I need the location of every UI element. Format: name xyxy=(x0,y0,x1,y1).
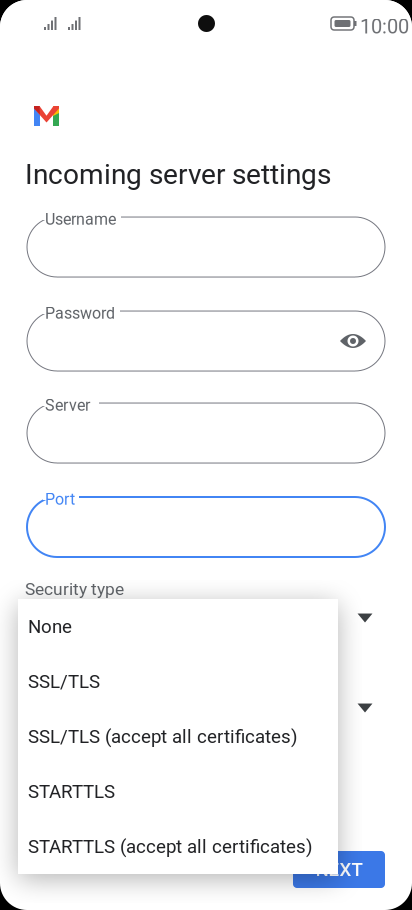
button[interactable]: Delete email from server xyxy=(343,691,387,725)
button[interactable]: SSL/TLS (accept all certificates) xyxy=(18,709,338,764)
button[interactable]: None xyxy=(18,599,338,654)
staticText: NEXT xyxy=(315,859,362,880)
button[interactable]: Server xyxy=(27,393,385,463)
button[interactable]: Port xyxy=(27,487,385,557)
staticText: 10:00 xyxy=(360,15,409,38)
button[interactable]: Password xyxy=(27,301,385,371)
staticText: Password xyxy=(45,304,115,323)
staticText: Security type xyxy=(25,579,124,599)
staticText: STARTTLS (accept all certificates) xyxy=(28,836,312,857)
staticText: STARTTLS xyxy=(28,781,115,802)
staticText: Port xyxy=(45,490,75,509)
staticText: SSL/TLS (accept all certificates) xyxy=(28,726,297,747)
staticText: Server xyxy=(45,396,90,415)
button[interactable]: STARTTLS xyxy=(18,764,338,819)
button[interactable]: SSL/TLS xyxy=(18,654,338,709)
staticText: Incoming server settings xyxy=(25,158,331,191)
staticText: SSL/TLS xyxy=(28,671,100,692)
button[interactable]: STARTTLS (accept all certificates) xyxy=(18,819,338,874)
button[interactable]: Show password xyxy=(339,330,367,352)
staticText: Username xyxy=(45,210,116,229)
button[interactable]: NEXT xyxy=(293,851,385,888)
button[interactable]: Username xyxy=(27,207,385,277)
staticText: None xyxy=(28,616,72,637)
button[interactable]: Security type xyxy=(343,601,387,635)
